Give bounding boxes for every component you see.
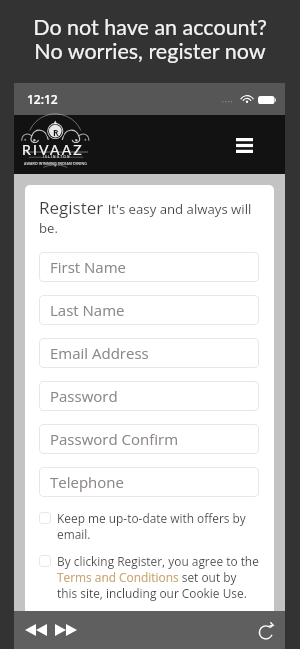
- button[interactable]: By clicking Register, you agree to the T…: [39, 553, 259, 601]
- staticText: RIVAAZ: [22, 141, 84, 158]
- staticText: R: [53, 127, 59, 139]
- staticText: Email Address: [50, 343, 149, 363]
- button[interactable]: Forward: [52, 616, 80, 644]
- staticText: Last Name: [50, 300, 125, 320]
- button[interactable]: Reload page: [254, 618, 278, 642]
- staticText: Telephone: [50, 472, 124, 492]
- staticText: I S L I N G T O N: [43, 155, 70, 159]
- staticText: Do not have an account? No worries, regi…: [33, 14, 267, 63]
- button[interactable]: First Name: [39, 252, 259, 282]
- staticText: Password Confirm: [50, 429, 179, 449]
- button[interactable]: Open menu: [229, 130, 259, 160]
- staticText: Password: [50, 386, 118, 406]
- button[interactable]: Password Confirm: [39, 424, 259, 454]
- staticText: 12:12: [27, 91, 58, 107]
- staticText: By clicking Register, you agree to the T…: [57, 553, 259, 601]
- staticText: Register It's easy and always will be.: [39, 196, 259, 237]
- staticText: Keep me up-to-date with offers by email.: [57, 510, 259, 542]
- button[interactable]: Back: [22, 616, 50, 644]
- button[interactable]: Last Name: [39, 295, 259, 325]
- button[interactable]: Password: [39, 381, 259, 411]
- button[interactable]: Keep me up-to-date with offers by email.: [39, 510, 259, 542]
- staticText: First Name: [50, 257, 126, 277]
- staticText: AWARD WINNING INDIAN DINING: [24, 161, 88, 166]
- button[interactable]: Telephone: [39, 467, 259, 497]
- button[interactable]: Email Address: [39, 338, 259, 368]
